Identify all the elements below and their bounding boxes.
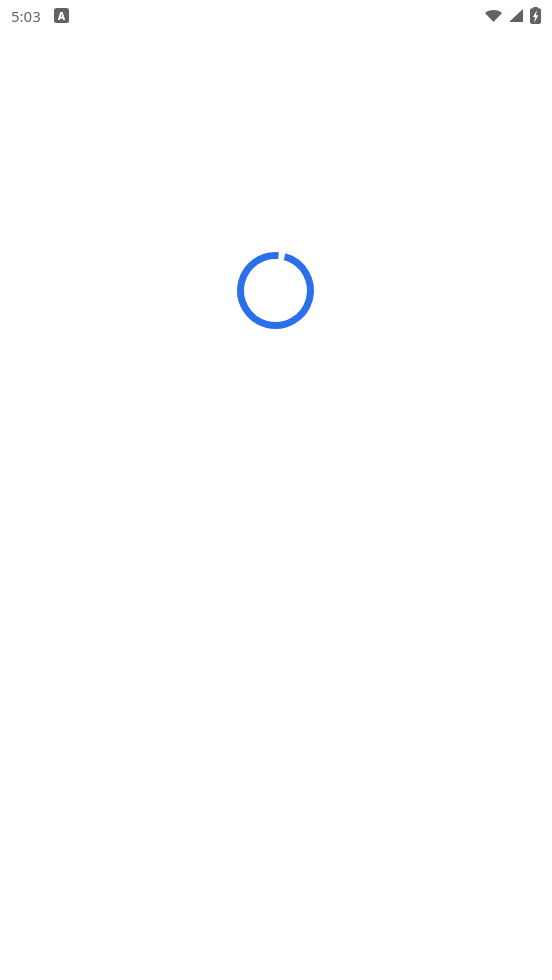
staticText: A [58, 9, 65, 23]
staticText: 5:03 [11, 6, 41, 26]
other: Loading [237, 252, 314, 329]
